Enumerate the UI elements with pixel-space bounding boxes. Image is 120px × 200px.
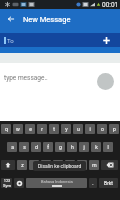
staticText: h [71,144,74,150]
button[interactable]: i [85,124,95,134]
button[interactable]: n [77,160,87,170]
staticText: l [107,144,109,150]
button[interactable]: Backspace [101,160,118,170]
staticText: type message.. [4,74,48,82]
staticText: . [92,180,94,186]
button[interactable]: . [89,178,97,188]
staticText: q [5,126,8,132]
staticText: d [35,144,38,150]
staticText: z [21,162,24,168]
button[interactable]: k [91,142,101,152]
staticText: u [77,126,80,132]
button[interactable]: j [79,142,89,152]
button[interactable]: Shift [1,160,15,170]
button[interactable]: 123 Sym [1,178,12,188]
button[interactable]: y [61,124,71,134]
staticText: a [11,144,14,150]
staticText: m [92,162,97,168]
button[interactable]: g [55,142,65,152]
staticText: o [101,126,104,132]
button[interactable]: r [37,124,47,134]
staticText: e [29,126,32,132]
button[interactable]: c [41,160,51,170]
button[interactable]: e [25,124,35,134]
button[interactable]: d [31,142,41,152]
button[interactable]: x [29,160,39,170]
button[interactable]: Send [97,73,114,90]
button[interactable]: Settings [14,178,24,188]
button[interactable]: Space [26,178,87,188]
staticText: k [95,144,98,150]
staticText: s [23,144,26,150]
staticText: 123 Sym [3,178,11,188]
button[interactable]: h [67,142,77,152]
staticText: y [65,126,68,132]
button[interactable]: z [17,160,27,170]
staticText: g [59,144,62,150]
staticText: Brkt [104,180,113,186]
staticText: Disalin ke clipboard [38,163,82,169]
button[interactable]: m [89,160,99,170]
button[interactable]: t [49,124,59,134]
button[interactable]: q [1,124,11,134]
button[interactable]: s [19,142,29,152]
staticText: j [83,144,85,150]
staticText: v [57,162,60,168]
button[interactable]: v [53,160,63,170]
staticText: New Message [23,15,71,24]
staticText: p [113,126,116,132]
staticText: w [16,126,20,132]
staticText: Bahasa Indonesia [41,179,73,184]
button[interactable]: Brkt [99,178,118,188]
staticText: c [45,162,48,168]
staticText: t [53,126,55,132]
button[interactable]: f [43,142,53,152]
button[interactable]: Back [0,9,21,33]
button[interactable]: o [97,124,107,134]
staticText: f [47,144,49,150]
button[interactable]: b [65,160,75,170]
button[interactable]: u [73,124,83,134]
staticText: To [7,37,14,44]
staticText: r [41,126,43,132]
button[interactable]: w [13,124,23,134]
button[interactable]: p [109,124,119,134]
staticText: i [89,126,91,132]
staticText: b [69,162,72,168]
button[interactable]: Add recipient [99,33,113,47]
button[interactable]: a [7,142,17,152]
button[interactable]: l [103,142,113,152]
staticText: 00:01 [102,1,119,9]
